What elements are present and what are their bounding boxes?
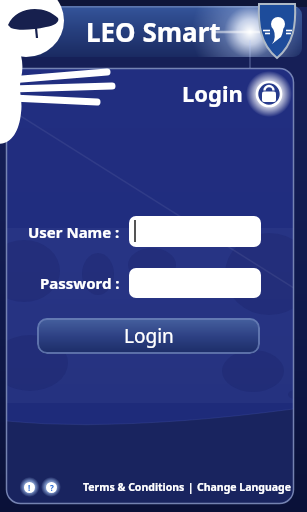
staticText: Login	[124, 323, 174, 349]
staticText: |	[185, 480, 197, 494]
button[interactable]	[129, 268, 261, 298]
staticText: Password :	[40, 273, 120, 293]
button[interactable]: ?	[46, 482, 57, 493]
staticText: Login	[182, 78, 243, 108]
button[interactable]: !	[24, 482, 35, 493]
button[interactable]	[129, 216, 261, 247]
button[interactable]: Login	[37, 318, 260, 354]
button[interactable]: Terms & Conditions	[83, 480, 185, 494]
staticText: !	[28, 482, 31, 493]
staticText: ?	[50, 482, 54, 493]
staticText: LEO Smart	[86, 14, 221, 49]
button[interactable]	[255, 80, 283, 108]
staticText: User Name :	[28, 222, 120, 242]
button[interactable]: Change Language	[197, 480, 291, 494]
